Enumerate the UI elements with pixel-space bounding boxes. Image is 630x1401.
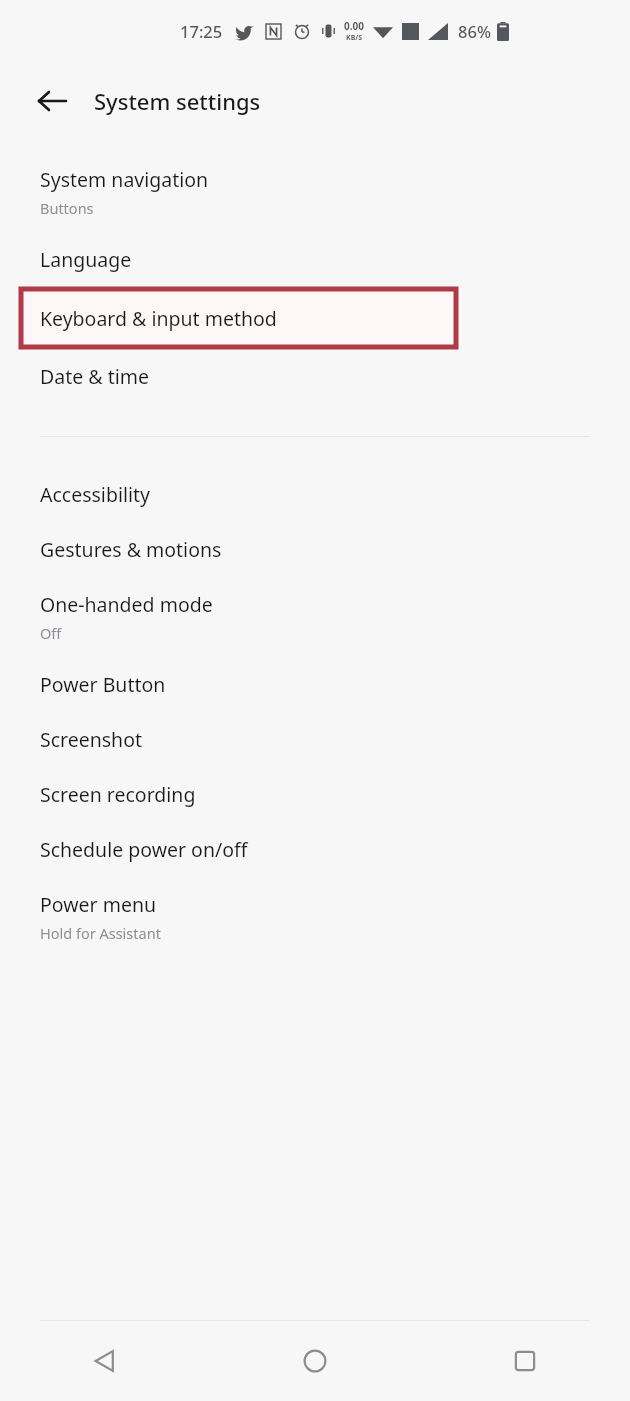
- button[interactable]: Power menu: [0, 877, 630, 957]
- button[interactable]: Home: [210, 1321, 420, 1401]
- button[interactable]: Recent apps: [420, 1321, 630, 1401]
- button[interactable]: Accessibility: [0, 467, 630, 522]
- staticText: Gestures & motions: [40, 536, 222, 563]
- button[interactable]: One-handed mode: [0, 577, 630, 657]
- button[interactable]: Screen recording: [0, 767, 630, 822]
- button[interactable]: Power Button: [0, 657, 630, 712]
- staticText: Keyboard & input method: [40, 305, 277, 332]
- button[interactable]: Date & time: [0, 349, 630, 404]
- staticText: System settings: [94, 86, 261, 116]
- staticText: Power Button: [40, 671, 166, 698]
- staticText: Screen recording: [40, 781, 196, 808]
- button[interactable]: Back: [26, 75, 78, 127]
- staticText: Off: [40, 623, 62, 643]
- button[interactable]: Keyboard & input method: [0, 287, 630, 349]
- staticText: Power menu: [40, 891, 156, 918]
- staticText: One-handed mode: [40, 591, 213, 618]
- button[interactable]: Schedule power on/off: [0, 822, 630, 877]
- staticText: Hold for Assistant: [40, 923, 161, 943]
- staticText: KB/S: [346, 33, 363, 43]
- staticText: Buttons: [40, 198, 94, 218]
- button[interactable]: System navigation: [0, 152, 630, 232]
- button[interactable]: Gestures & motions: [0, 522, 630, 577]
- staticText: Screenshot: [40, 726, 143, 753]
- staticText: Date & time: [40, 363, 149, 390]
- staticText: Accessibility: [40, 481, 150, 508]
- staticText: Schedule power on/off: [40, 836, 248, 863]
- button[interactable]: Back: [0, 1321, 210, 1401]
- staticText: Language: [40, 246, 132, 273]
- staticText: 0.00: [344, 19, 364, 33]
- button[interactable]: Screenshot: [0, 712, 630, 767]
- staticText: System navigation: [40, 166, 209, 193]
- staticText: 17:25: [180, 20, 223, 42]
- staticText: 86%: [458, 20, 491, 42]
- button[interactable]: Language: [0, 232, 630, 287]
